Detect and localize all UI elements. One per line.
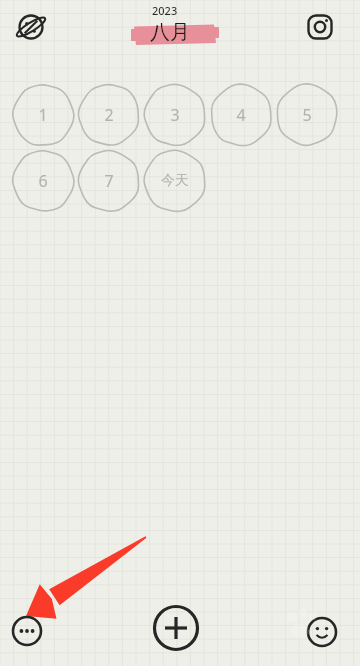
staticText: 2023	[152, 3, 178, 18]
button[interactable]: 八月	[150, 20, 190, 45]
staticText: 3	[170, 104, 180, 126]
staticText: 2	[104, 104, 114, 126]
button[interactable]: 7	[78, 150, 140, 212]
button[interactable]: 1	[12, 84, 74, 146]
button[interactable]: Add entry	[152, 604, 200, 652]
button[interactable]: More options	[8, 612, 46, 650]
staticText: 1	[38, 104, 48, 126]
staticText: 6	[38, 170, 48, 192]
button[interactable]: 2	[78, 84, 140, 146]
staticText: 7	[104, 170, 114, 192]
button[interactable]: 4	[210, 84, 272, 146]
button[interactable]: Explore	[10, 6, 52, 48]
button[interactable]: 3	[144, 84, 206, 146]
staticText: 4	[236, 104, 246, 126]
button[interactable]: 5	[276, 84, 338, 146]
staticText: 5	[302, 104, 312, 126]
button[interactable]: Mood	[303, 613, 341, 651]
button[interactable]: 今天	[144, 150, 206, 212]
staticText: 今天	[161, 172, 189, 190]
staticText: 八月	[150, 20, 190, 45]
button[interactable]: 6	[12, 150, 74, 212]
button[interactable]: Camera	[299, 6, 341, 48]
